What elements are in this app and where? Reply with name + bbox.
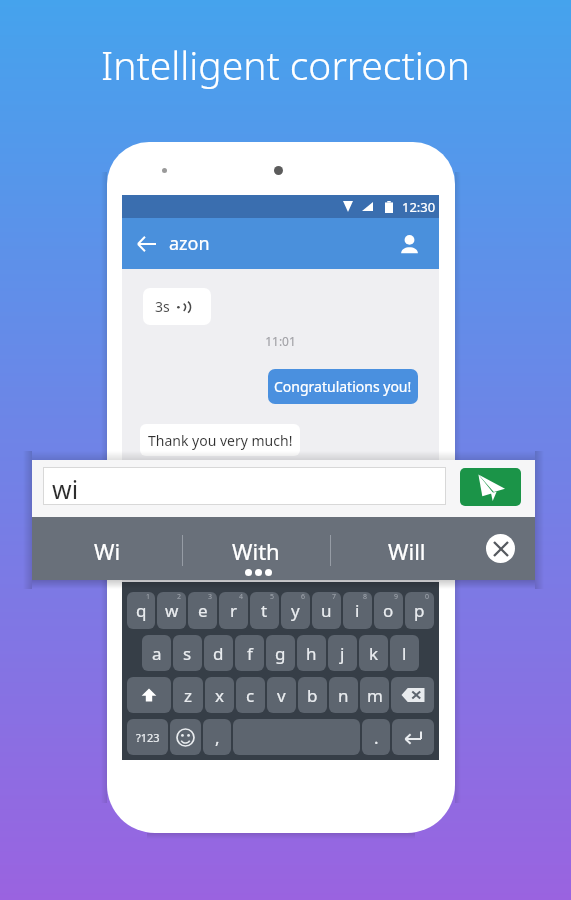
staticText: Thank you very much! (148, 431, 293, 450)
button[interactable]: 2 (157, 592, 186, 629)
staticText: Intelligent correction (0, 38, 571, 91)
staticText: l (402, 642, 407, 665)
staticText: q (136, 599, 147, 622)
staticText: s (183, 642, 192, 665)
staticText: f (247, 642, 253, 665)
staticText: 1 (146, 592, 151, 602)
button[interactable]: 1 (127, 592, 155, 629)
staticText: o (383, 599, 394, 622)
button[interactable]: l (390, 635, 419, 671)
staticText: p (414, 599, 425, 622)
staticText: z (184, 684, 192, 707)
staticText: h (306, 642, 317, 665)
staticText: t (261, 599, 268, 622)
staticText: b (307, 684, 318, 707)
staticText: 12:30 (402, 198, 436, 216)
staticText: 6 (301, 592, 306, 602)
button[interactable]: c (236, 677, 265, 713)
button[interactable]: Close (470, 517, 530, 580)
button[interactable]: s (173, 635, 202, 671)
button[interactable]: wi (43, 467, 446, 505)
button[interactable]: , (203, 719, 231, 755)
button[interactable]: 4 (219, 592, 248, 629)
button[interactable]: f (235, 635, 264, 671)
button[interactable]: 3 (188, 592, 217, 629)
button[interactable]: Enter (392, 719, 434, 755)
button[interactable]: m (360, 677, 389, 713)
staticText: With (232, 536, 280, 566)
button[interactable]: . (362, 719, 390, 755)
button[interactable]: Space (233, 719, 360, 755)
button[interactable]: Shift (127, 677, 171, 713)
button[interactable]: Will (330, 517, 484, 580)
button[interactable]: 8 (343, 592, 372, 629)
button[interactable]: With (182, 517, 330, 580)
staticText: j (340, 642, 345, 665)
button[interactable]: k (359, 635, 388, 671)
staticText: y (291, 599, 300, 622)
staticText: x (215, 684, 224, 707)
staticText: r (230, 599, 238, 622)
staticText: m (367, 684, 383, 707)
button[interactable]: v (267, 677, 296, 713)
button[interactable]: j (328, 635, 357, 671)
button[interactable]: Contact (391, 226, 427, 262)
staticText: . (374, 726, 379, 749)
staticText: d (213, 642, 224, 665)
staticText: 0 (425, 592, 430, 602)
button[interactable]: n (329, 677, 358, 713)
button[interactable]: 0 (405, 592, 434, 629)
button[interactable]: b (298, 677, 327, 713)
staticText: g (275, 642, 286, 665)
staticText: Wi (94, 536, 121, 566)
button[interactable]: 9 (374, 592, 403, 629)
button[interactable]: Symbols (127, 719, 168, 755)
staticText: Congratulations you! (274, 377, 412, 396)
staticText: 11:01 (122, 333, 439, 349)
staticText: 8 (363, 592, 368, 602)
staticText: n (338, 684, 349, 707)
staticText: u (321, 599, 332, 622)
staticText: Will (388, 536, 426, 566)
button[interactable]: d (204, 635, 233, 671)
staticText: wi (52, 472, 79, 506)
button[interactable]: 7 (312, 592, 341, 629)
staticText: v (277, 684, 286, 707)
staticText: e (198, 599, 208, 622)
staticText: ?123 (136, 730, 160, 745)
staticText: w (165, 599, 179, 622)
staticText: i (355, 599, 360, 622)
staticText: azon (169, 231, 210, 256)
staticText: k (369, 642, 379, 665)
button[interactable]: Wi (32, 517, 182, 580)
button[interactable]: x (205, 677, 234, 713)
staticText: 3 (208, 592, 213, 602)
staticText: a (152, 642, 162, 665)
staticText: 9 (394, 592, 399, 602)
button[interactable]: h (297, 635, 326, 671)
staticText: 7 (332, 592, 337, 602)
staticText: c (246, 684, 255, 707)
button[interactable]: Send (460, 468, 521, 506)
button[interactable]: 5 (250, 592, 279, 629)
staticText: 3s (155, 297, 170, 316)
staticText: 4 (239, 592, 244, 602)
button[interactable]: Back (129, 227, 163, 261)
button[interactable]: 6 (281, 592, 310, 629)
button[interactable]: g (266, 635, 295, 671)
staticText: 5 (270, 592, 275, 602)
staticText: , (215, 726, 220, 749)
button[interactable]: z (173, 677, 203, 713)
button[interactable]: Backspace (391, 677, 434, 713)
button[interactable]: a (142, 635, 171, 671)
button[interactable]: Emoji (170, 719, 201, 755)
staticText: 2 (177, 592, 182, 602)
